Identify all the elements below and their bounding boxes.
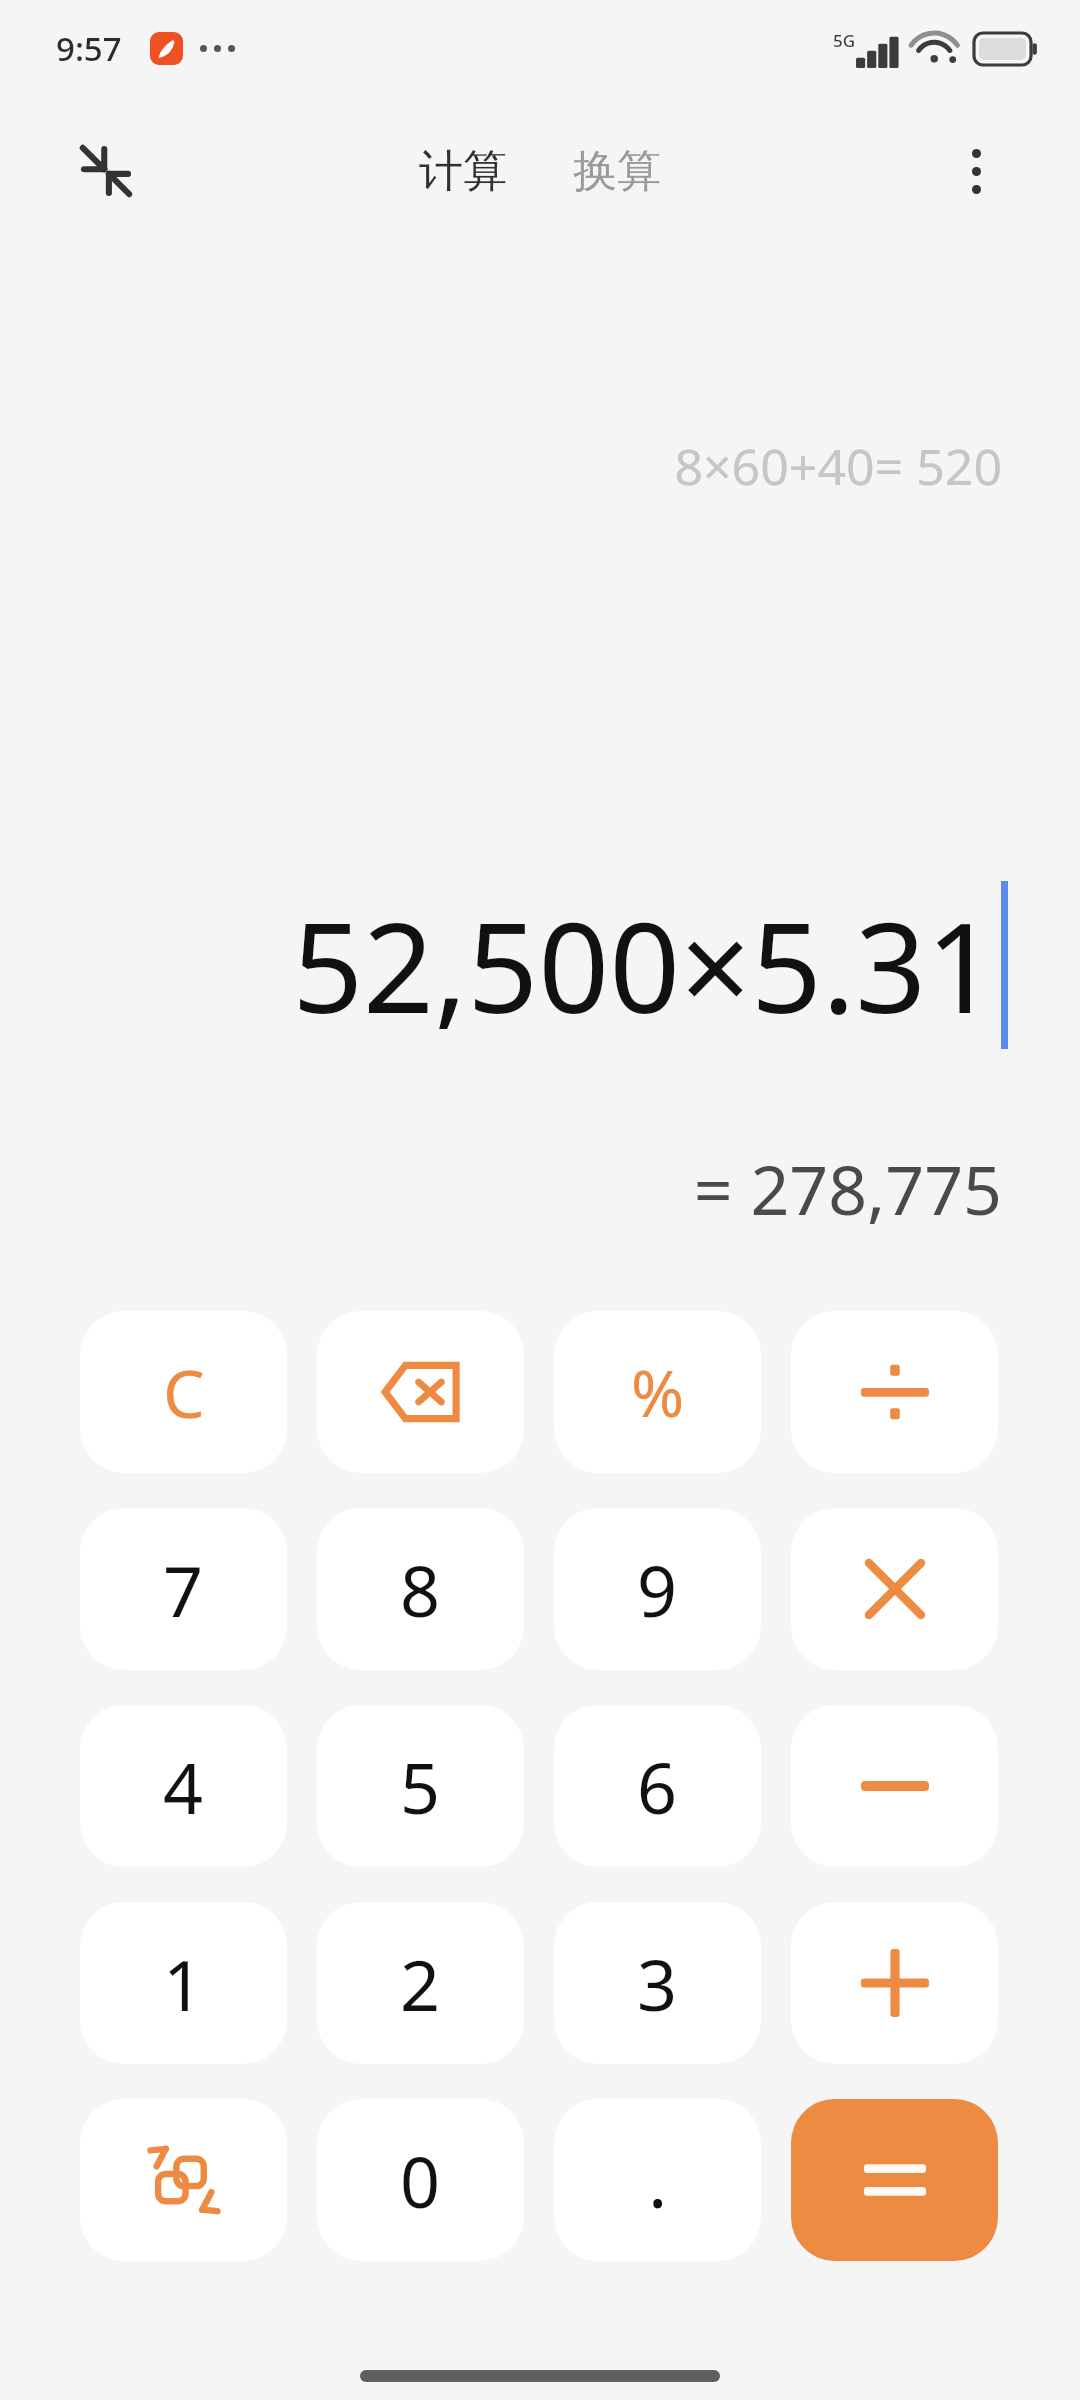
button[interactable]: 9 xyxy=(554,1508,761,1670)
staticText: 2 xyxy=(400,1936,441,2031)
button[interactable]: 5 xyxy=(317,1705,524,1867)
button[interactable]: 8 xyxy=(317,1508,524,1670)
staticText: 8×60+40= 520 xyxy=(674,432,1002,500)
button[interactable]: 3 xyxy=(554,1902,761,2064)
staticText: 6 xyxy=(637,1739,678,1834)
staticText: 5G xyxy=(833,29,856,52)
staticText: 9:57 xyxy=(56,26,122,71)
button[interactable]: . xyxy=(554,2099,761,2261)
button[interactable]: 换算 xyxy=(559,136,675,207)
staticText: 52,500×5.31 xyxy=(292,880,997,1049)
staticText: % xyxy=(631,1349,685,1436)
staticText: = 278,775 xyxy=(693,1142,1002,1235)
staticText: 换算 xyxy=(573,144,661,199)
button[interactable]: 4 xyxy=(80,1705,287,1867)
staticText: 3 xyxy=(637,1936,678,2031)
button[interactable]: 7 xyxy=(80,1508,287,1670)
button[interactable]: Collapse xyxy=(56,121,156,221)
staticText: 4 xyxy=(163,1739,204,1834)
staticText: 1 xyxy=(163,1936,204,2031)
staticText: 计算 xyxy=(419,144,507,199)
button[interactable]: Backspace xyxy=(317,1311,524,1473)
staticText: 5 xyxy=(400,1739,441,1834)
staticText: 8 xyxy=(400,1542,441,1637)
button[interactable]: 6 xyxy=(554,1705,761,1867)
button[interactable]: 计算 xyxy=(405,136,521,207)
button[interactable]: 2 xyxy=(317,1902,524,2064)
button[interactable]: 0 xyxy=(317,2099,524,2261)
button[interactable]: Equals xyxy=(791,2099,998,2261)
staticText: 0 xyxy=(400,2133,441,2228)
button[interactable]: Subtract xyxy=(791,1705,998,1867)
staticText: . xyxy=(648,2131,668,2229)
button[interactable]: Percent xyxy=(554,1311,761,1473)
button[interactable]: Add xyxy=(791,1902,998,2064)
button[interactable]: C xyxy=(80,1311,287,1473)
button[interactable]: Scientific mode xyxy=(80,2099,287,2261)
staticText: 9 xyxy=(637,1542,678,1637)
button[interactable]: 1 xyxy=(80,1902,287,2064)
button[interactable]: More options xyxy=(928,123,1024,219)
button[interactable]: Multiply xyxy=(791,1508,998,1670)
staticText: C xyxy=(163,1347,205,1437)
button[interactable]: Divide xyxy=(791,1311,998,1473)
staticText: 7 xyxy=(163,1542,204,1637)
